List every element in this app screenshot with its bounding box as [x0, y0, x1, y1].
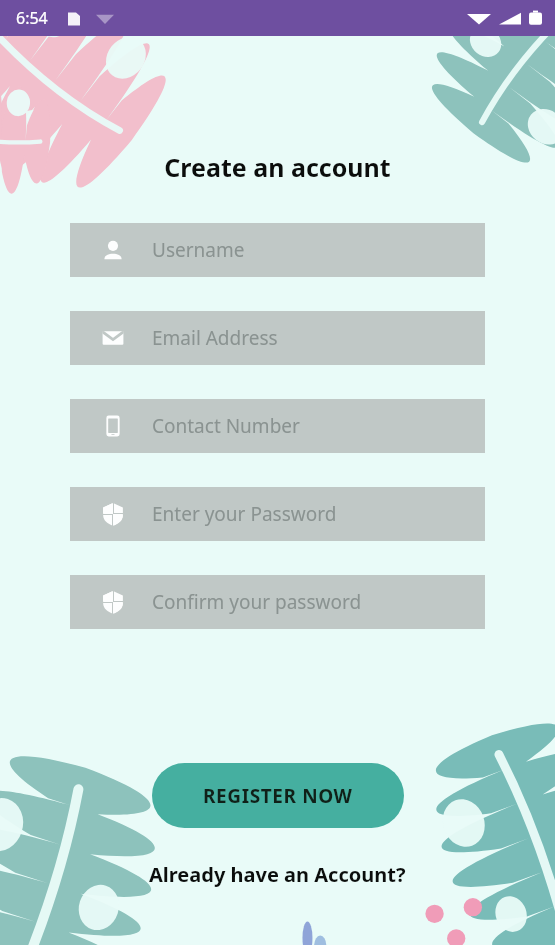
staticText: REGISTER NOW [203, 783, 353, 809]
staticText: Create an account [164, 150, 391, 184]
button[interactable]: REGISTER NOW [152, 763, 404, 828]
staticText: Confirm your password [152, 589, 362, 615]
staticText: Already have an Account? [149, 861, 406, 888]
button[interactable]: Contact Number [70, 399, 485, 453]
button[interactable]: Email Address [70, 311, 485, 365]
staticText: Contact Number [152, 413, 300, 439]
staticText: Username [152, 237, 245, 263]
staticText: Enter your Password [152, 501, 337, 527]
staticText: 6:54 [16, 7, 48, 29]
button[interactable]: Username [70, 223, 485, 277]
staticText: Email Address [152, 325, 278, 351]
button[interactable]: Confirm your password [70, 575, 485, 629]
button[interactable]: Already have an Account? [141, 857, 414, 892]
button[interactable]: Enter your Password [70, 487, 485, 541]
